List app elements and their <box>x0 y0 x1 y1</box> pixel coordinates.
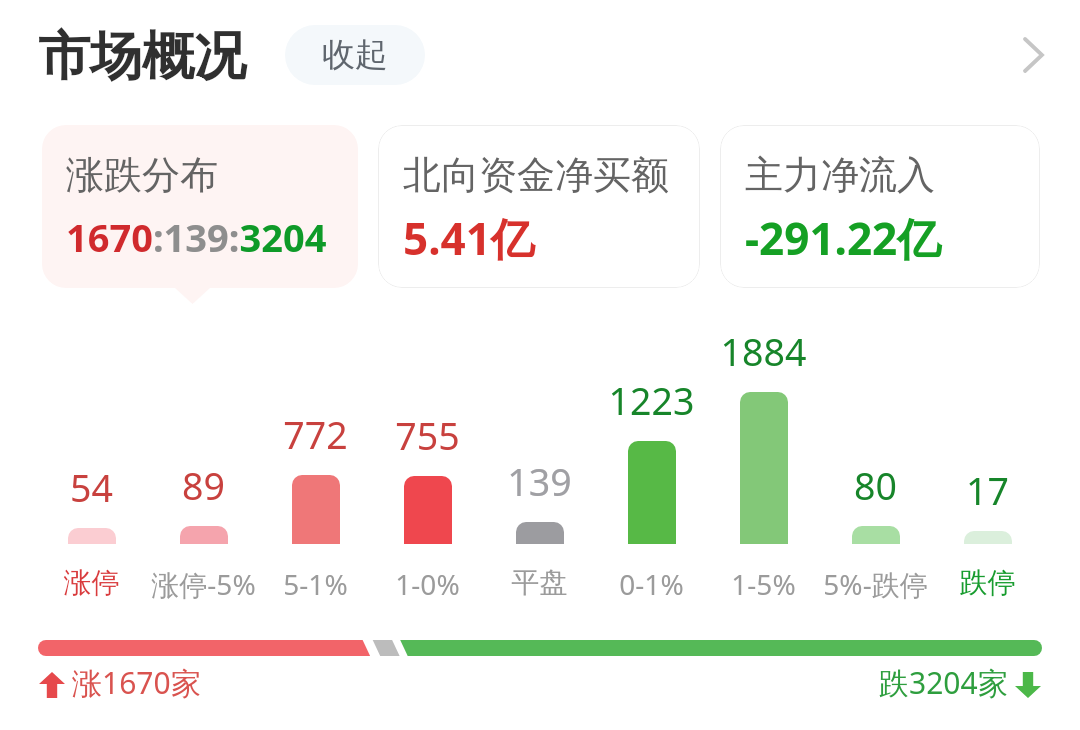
staticText: 1-5% <box>708 565 819 603</box>
staticText: 涨1670家 <box>72 662 201 703</box>
staticText: 755 <box>372 410 483 461</box>
button[interactable]: 市场概况 <box>38 24 246 90</box>
staticText: 0-1% <box>596 565 707 603</box>
staticText: 54 <box>36 462 147 513</box>
staticText: 涨停-5% <box>148 565 259 603</box>
staticText: 北向资金净买额 <box>403 151 669 199</box>
staticText: 17 <box>932 465 1043 516</box>
staticText: -291.22亿 <box>745 208 942 268</box>
staticText: 80 <box>820 460 931 511</box>
staticText: 89 <box>148 460 259 511</box>
staticText: 市场概况 <box>38 24 246 90</box>
staticText: 5.41亿 <box>403 208 535 268</box>
staticText: 139 <box>484 456 595 507</box>
button[interactable]: 北向资金净买额 <box>378 125 700 288</box>
staticText: 收起 <box>322 34 388 76</box>
staticText: 1884 <box>708 326 819 377</box>
staticText: 跌3204家 <box>879 662 1008 703</box>
staticText: 772 <box>260 409 371 460</box>
staticText: 涨跌分布 <box>66 151 218 199</box>
button[interactable]: 主力净流入 <box>720 125 1040 288</box>
staticText: 平盘 <box>484 565 595 600</box>
staticText: 5%-跌停 <box>820 565 931 603</box>
button[interactable]: 涨跌分布 <box>42 125 358 288</box>
staticText: 1-0% <box>372 565 483 603</box>
other: Rising <box>39 672 65 698</box>
staticText: 主力净流入 <box>745 151 935 199</box>
staticText: 5-1% <box>260 565 371 603</box>
button[interactable]: Expand <box>1010 24 1072 86</box>
staticText: 涨停 <box>36 565 147 600</box>
staticText: 跌停 <box>932 565 1043 600</box>
other: Falling <box>1015 672 1041 698</box>
staticText: 1670:139:3204 <box>66 211 327 263</box>
staticText: 1223 <box>596 375 707 426</box>
button[interactable]: 收起 <box>285 25 425 85</box>
